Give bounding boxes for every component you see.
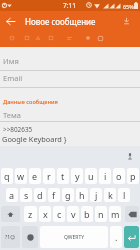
- staticText: j: [95, 189, 98, 201]
- staticText: s: [24, 189, 29, 201]
- button[interactable]: Back: [0, 11, 20, 31]
- staticText: z: [28, 208, 33, 220]
- button[interactable]: g: [62, 188, 74, 202]
- button[interactable]: QWERTY: [40, 226, 108, 248]
- staticText: m: [111, 208, 120, 220]
- button[interactable]: e: [29, 168, 41, 184]
- staticText: >>802635: [3, 125, 33, 134]
- staticText: t: [61, 170, 65, 182]
- button[interactable]: k: [104, 188, 116, 202]
- button[interactable]: u: [85, 168, 97, 184]
- button[interactable]: Formatting option: [22, 33, 32, 43]
- button[interactable]: f: [48, 188, 60, 202]
- staticText: b: [84, 208, 90, 220]
- staticText: y: [75, 170, 80, 182]
- button[interactable]: z: [24, 206, 37, 222]
- button[interactable]: m: [109, 206, 121, 222]
- button[interactable]: Voice input: [125, 151, 135, 161]
- button[interactable]: Email: [0, 68, 140, 88]
- button[interactable]: d: [34, 188, 46, 202]
- staticText: k: [108, 189, 113, 201]
- button[interactable]: Formatting option: [46, 33, 56, 43]
- button[interactable]: >>802635: [0, 122, 140, 146]
- staticText: u: [88, 170, 94, 182]
- staticText: .: [115, 231, 118, 243]
- button[interactable]: o: [113, 168, 125, 184]
- button[interactable]: ?1☺: [1, 226, 20, 248]
- button[interactable]: Shift: [1, 206, 20, 222]
- button[interactable]: Formatting option: [7, 33, 17, 43]
- staticText: Тема: [3, 110, 21, 120]
- button[interactable]: p: [127, 168, 139, 184]
- staticText: g: [65, 189, 71, 201]
- staticText: Google Keyboard }: [2, 134, 67, 144]
- button[interactable]: .: [110, 226, 122, 248]
- button[interactable]: s: [20, 188, 32, 202]
- button[interactable]: b: [81, 206, 93, 222]
- button[interactable]: r: [43, 168, 55, 184]
- staticText: w: [17, 170, 25, 182]
- staticText: Данные сообщения: [3, 98, 58, 106]
- other: Backspace: [128, 211, 137, 218]
- button[interactable]: t: [57, 168, 69, 184]
- button[interactable]: Formatting option: [83, 33, 93, 43]
- staticText: 7:11: [63, 1, 77, 10]
- staticText: p: [130, 170, 136, 182]
- staticText: i: [104, 170, 107, 182]
- button[interactable]: Emoji: [22, 226, 38, 248]
- button[interactable]: y: [71, 168, 83, 184]
- button[interactable]: n: [95, 206, 107, 222]
- button[interactable]: i: [99, 168, 111, 184]
- staticText: l: [123, 189, 126, 201]
- other: Enter: [127, 233, 136, 242]
- staticText: c: [57, 208, 62, 220]
- button[interactable]: v: [67, 206, 79, 222]
- staticText: h: [79, 189, 85, 201]
- staticText: f: [52, 189, 56, 201]
- button[interactable]: Attach: [117, 12, 135, 30]
- staticText: d: [37, 189, 43, 201]
- button[interactable]: x: [39, 206, 51, 222]
- button[interactable]: Formatting option: [95, 33, 106, 44]
- button[interactable]: Данные сообщения: [0, 93, 140, 111]
- staticText: a: [9, 189, 15, 201]
- staticText: 65%: [123, 3, 134, 10]
- button[interactable]: Formatting option: [64, 33, 75, 44]
- button[interactable]: Formatting option: [33, 33, 43, 43]
- staticText: q: [4, 170, 10, 182]
- staticText: x: [43, 208, 48, 220]
- button[interactable]: Тема: [0, 105, 140, 122]
- staticText: Новое сообщение: [25, 16, 96, 27]
- staticText: r: [47, 170, 51, 182]
- staticText: ?1☺: [5, 234, 16, 241]
- staticText: Email: [3, 73, 23, 83]
- button[interactable]: Backspace: [125, 206, 139, 222]
- staticText: e: [32, 170, 38, 182]
- button[interactable]: l: [118, 188, 130, 202]
- staticText: QWERTY: [64, 234, 85, 241]
- other: Emoji: [27, 234, 34, 241]
- button[interactable]: q: [1, 168, 13, 184]
- staticText: o: [116, 170, 122, 182]
- button[interactable]: c: [53, 206, 65, 222]
- button[interactable]: Имя: [0, 45, 140, 71]
- button[interactable]: h: [76, 188, 88, 202]
- button[interactable]: Enter: [124, 226, 139, 248]
- staticText: n: [98, 208, 104, 220]
- other: Shift: [7, 211, 14, 218]
- button[interactable]: a: [6, 188, 18, 202]
- button[interactable]: w: [15, 168, 27, 184]
- staticText: Имя: [3, 56, 19, 66]
- staticText: v: [71, 208, 76, 220]
- button[interactable]: j: [90, 188, 102, 202]
